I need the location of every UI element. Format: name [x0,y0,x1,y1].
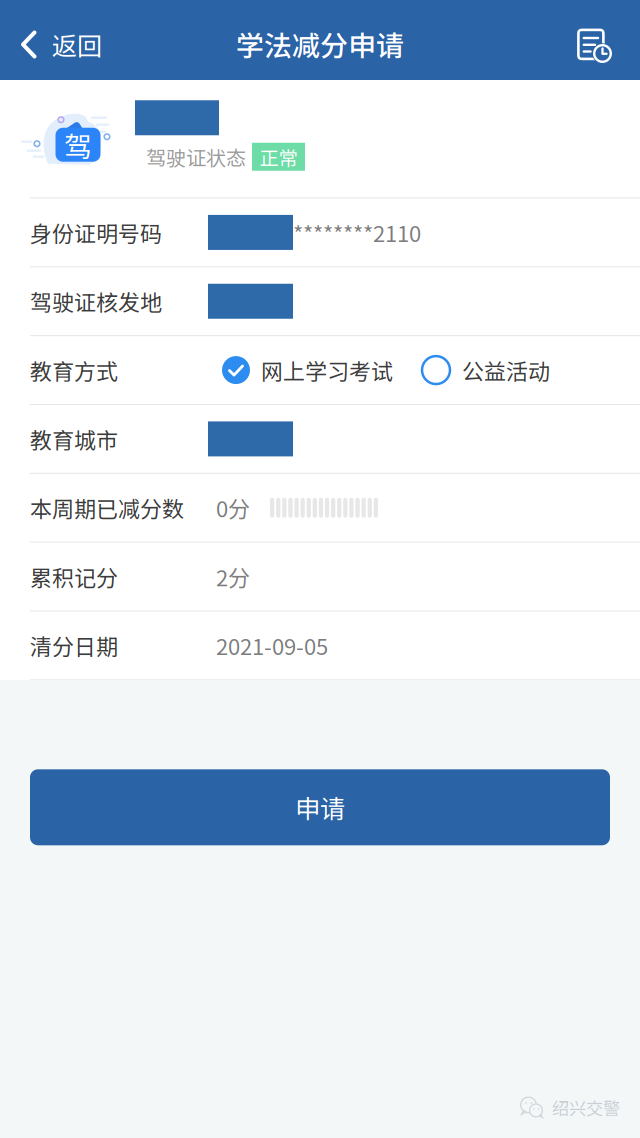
staticText: 教育城市 [30,423,118,455]
staticText: 2分 [216,561,250,592]
staticText: 驾驶证状态 [146,142,246,171]
staticText: 正常 [259,143,297,171]
button[interactable]: 申请 [30,769,610,845]
staticText: 2021-09-05 [216,629,328,661]
staticText: 0分 [216,492,250,524]
staticText: 清分日期 [30,629,118,661]
staticText: 教育方式 [30,354,118,386]
staticText: 驾 [64,124,92,165]
staticText: 公益活动 [462,354,550,386]
staticText: 绍兴交警 [552,1095,620,1120]
staticText: 身份证明号码 [30,216,162,248]
staticText: 本周期已减分数 [30,492,184,524]
staticText: 网上学习考试 [261,354,393,386]
staticText: 学法减分申请 [236,24,404,64]
button[interactable]: 学习记录 [559,0,640,80]
staticText: 申请 [295,789,345,826]
staticText: 驾驶证核发地 [30,285,162,317]
button[interactable]: 返回 [0,0,118,80]
staticText: ********2110 [293,216,421,248]
staticText: 累积记分 [30,561,118,592]
staticText: 返回 [52,26,102,63]
